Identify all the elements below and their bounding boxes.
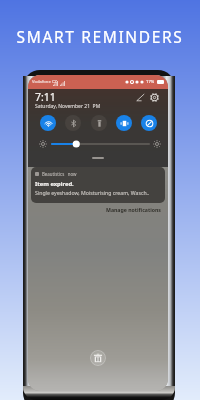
button[interactable]: Edit xyxy=(135,92,146,103)
button[interactable]: Clear all notifications xyxy=(90,350,106,366)
button[interactable]: Beautistics now xyxy=(31,167,165,203)
button[interactable]: Do not disturb xyxy=(141,115,157,131)
staticText: 7:11 xyxy=(35,90,56,104)
button[interactable]: Flashlight xyxy=(91,115,107,131)
button[interactable]: Vibrate xyxy=(116,115,132,131)
staticText: Beautistics now xyxy=(42,171,77,177)
staticText: SMART REMINDERS xyxy=(0,26,200,47)
button[interactable]: Bluetooth xyxy=(65,115,81,131)
staticText: Item expired. xyxy=(35,180,74,188)
button[interactable]: Wi-Fi xyxy=(40,115,56,131)
staticText: Saturday, November 21 PM xyxy=(35,103,101,110)
staticText: 17% xyxy=(146,79,155,85)
button[interactable]: Manage notifications xyxy=(106,206,161,213)
staticText: Vodafone CZ xyxy=(32,79,57,85)
staticText: Single eyeshadow, Moisturising cream, Wa… xyxy=(35,189,150,196)
button[interactable]: Settings xyxy=(149,92,160,103)
